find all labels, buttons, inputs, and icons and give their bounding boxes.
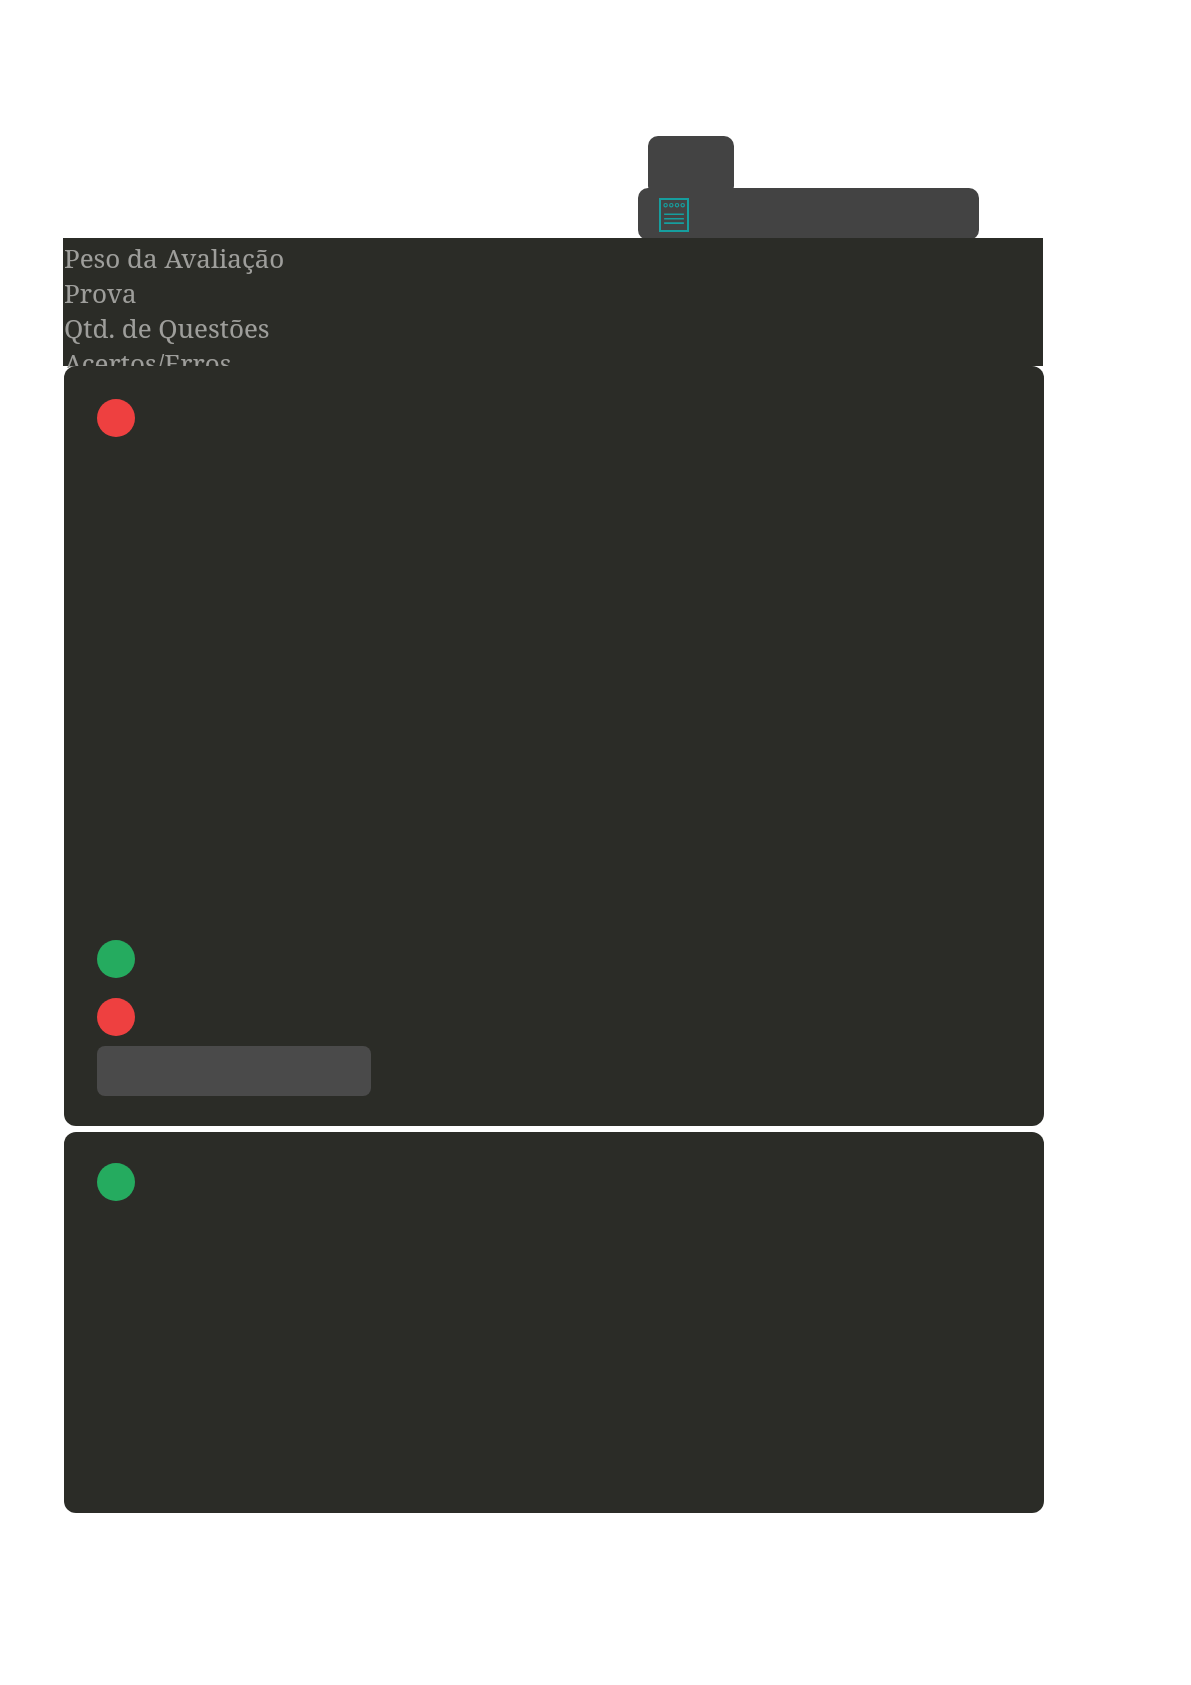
button[interactable]: Tab <box>648 136 734 196</box>
staticText: Peso da Avaliação <box>64 240 285 275</box>
staticText: Qtd. de Questões <box>64 310 270 345</box>
button[interactable]: Action <box>64 366 1044 1126</box>
button[interactable]: Document <box>659 198 689 232</box>
staticText: Prova <box>64 275 137 310</box>
button[interactable] <box>64 1132 1044 1513</box>
staticText: Acertos/Erros <box>64 345 232 368</box>
